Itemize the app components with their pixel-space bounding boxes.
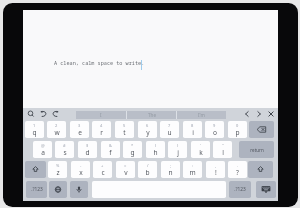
staticText: # — [63, 143, 66, 148]
button[interactable]: 9 — [205, 121, 224, 138]
staticText: $ — [86, 143, 89, 148]
button[interactable]: 7 — [160, 121, 179, 138]
staticText: m — [189, 168, 196, 177]
button[interactable]: + — [93, 161, 112, 178]
staticText: * — [131, 143, 134, 148]
button[interactable]: Redo — [49, 108, 61, 120]
staticText: The — [148, 112, 156, 118]
staticText: ; — [170, 163, 172, 168]
button[interactable]: " — [213, 141, 232, 158]
button[interactable]: Backspace — [249, 121, 274, 138]
button[interactable]: Previous — [241, 108, 253, 120]
button[interactable]: Dictation — [70, 181, 88, 198]
staticText: ' — [200, 143, 201, 148]
button[interactable]: * — [123, 141, 142, 158]
staticText: @ — [41, 143, 45, 148]
staticText: " — [222, 143, 224, 148]
button[interactable]: 1 — [25, 121, 44, 138]
staticText: 8 — [191, 123, 194, 128]
button[interactable]: .?123 — [229, 181, 251, 198]
button[interactable]: & — [101, 141, 120, 158]
staticText: w — [54, 128, 60, 137]
button[interactable]: 8 — [183, 121, 202, 138]
button[interactable]: 3 — [70, 121, 89, 138]
staticText: v — [124, 168, 128, 177]
button[interactable]: ( — [146, 141, 165, 158]
button[interactable]: - — [71, 161, 90, 178]
staticText: + — [101, 163, 104, 168]
button[interactable]: Hide keyboard — [256, 181, 276, 198]
staticText: I'm — [198, 112, 205, 118]
button[interactable]: The — [127, 111, 176, 119]
staticText: , — [215, 163, 217, 168]
button[interactable]: Next — [253, 108, 265, 120]
staticText: o — [213, 128, 217, 137]
staticText: 9 — [213, 123, 216, 128]
staticText: d — [85, 148, 90, 157]
staticText: .?123 — [31, 186, 43, 193]
staticText: s — [63, 148, 67, 157]
button[interactable]: % — [48, 161, 67, 178]
button[interactable]: Shift — [25, 161, 46, 178]
staticText: l — [222, 148, 224, 157]
staticText: c — [101, 168, 105, 177]
staticText: / — [147, 163, 149, 168]
staticText: A clean, calm space to write. — [54, 59, 145, 66]
button[interactable]: I'm — [177, 111, 226, 119]
button[interactable]: $ — [78, 141, 97, 158]
button[interactable]: return — [239, 141, 274, 158]
button[interactable]: , — [206, 161, 225, 178]
staticText: r — [100, 128, 103, 137]
staticText: .?123 — [234, 186, 246, 193]
staticText: q — [32, 128, 37, 137]
button[interactable]: @ — [33, 141, 52, 158]
staticText: = — [124, 163, 127, 168]
staticText: i — [192, 128, 194, 137]
staticText: 7 — [168, 123, 171, 128]
staticText: ( — [155, 143, 157, 148]
button[interactable]: .?123 — [26, 181, 47, 198]
button[interactable]: 0 — [228, 121, 247, 138]
button[interactable]: ; — [161, 161, 180, 178]
button[interactable]: : — [183, 161, 202, 178]
button[interactable]: Close keyboard — [265, 108, 277, 120]
button[interactable]: Change keyboard — [49, 181, 67, 198]
staticText: b — [145, 168, 150, 177]
button[interactable]: 4 — [92, 121, 111, 138]
button[interactable]: Undo — [38, 108, 50, 120]
button[interactable]: ' — [191, 141, 210, 158]
button[interactable]: # — [55, 141, 74, 158]
button[interactable]: . — [228, 161, 247, 178]
button[interactable]: Search — [25, 108, 37, 120]
button[interactable]: ) — [168, 141, 187, 158]
staticText: ? — [236, 168, 239, 177]
staticText: : — [192, 163, 194, 168]
button[interactable]: 2 — [47, 121, 66, 138]
staticText: e — [78, 128, 82, 137]
staticText: & — [109, 143, 112, 148]
staticText: 2 — [55, 123, 58, 128]
button[interactable]: 6 — [138, 121, 157, 138]
staticText: I — [100, 112, 102, 118]
button[interactable]: Shift — [248, 161, 273, 178]
staticText: % — [56, 163, 60, 168]
staticText: a — [41, 148, 45, 157]
staticText: f — [109, 148, 112, 157]
staticText: y — [146, 128, 150, 137]
button[interactable]: / — [138, 161, 157, 178]
staticText: n — [168, 168, 173, 177]
staticText: p — [235, 128, 240, 137]
staticText: u — [167, 128, 172, 137]
staticText: 6 — [146, 123, 149, 128]
staticText: ) — [177, 143, 179, 148]
button[interactable]: = — [116, 161, 135, 178]
staticText: . — [237, 163, 239, 168]
staticText: 0 — [236, 123, 239, 128]
staticText: - — [80, 163, 82, 168]
button[interactable]: 5 — [115, 121, 134, 138]
staticText: z — [56, 168, 60, 177]
staticText: ! — [215, 168, 217, 177]
staticText: return — [250, 147, 264, 153]
